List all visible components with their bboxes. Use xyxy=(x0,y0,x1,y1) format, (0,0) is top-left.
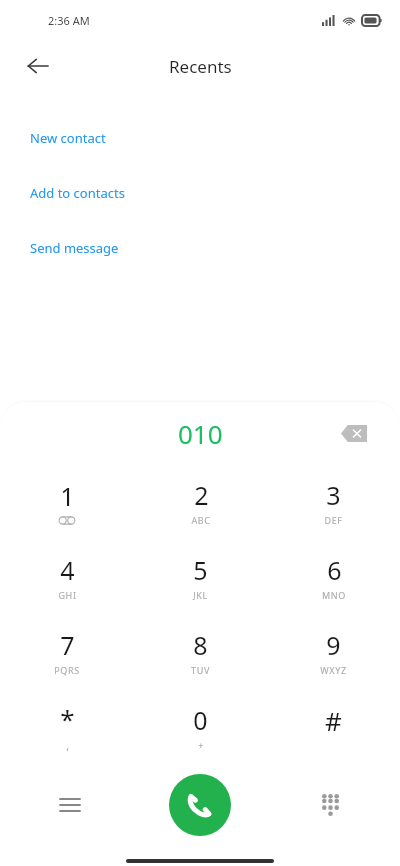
staticText: # xyxy=(325,703,342,738)
button[interactable]: New contact xyxy=(0,110,400,165)
staticText: 5 xyxy=(193,553,208,587)
staticText: Add to contacts xyxy=(30,184,125,202)
staticText: 3 xyxy=(326,478,341,512)
button[interactable]: Add to contacts xyxy=(0,165,400,220)
staticText: 8 xyxy=(193,628,208,662)
staticText: , xyxy=(66,738,70,753)
button[interactable]: Back xyxy=(16,44,60,88)
staticText: TUV xyxy=(191,664,210,676)
staticText: + xyxy=(198,739,204,751)
button[interactable]: 8 xyxy=(134,614,267,689)
button[interactable]: Send message xyxy=(0,220,400,275)
staticText: 1 xyxy=(60,479,75,513)
staticText: 6 xyxy=(327,553,342,587)
staticText: JKL xyxy=(193,589,208,601)
staticText: 2 xyxy=(194,478,209,512)
staticText: 2:36 AM xyxy=(48,13,90,28)
button[interactable]: # xyxy=(267,689,400,764)
staticText: GHI xyxy=(58,589,77,601)
staticText: 9 xyxy=(326,628,341,662)
button[interactable]: 1 xyxy=(0,464,134,539)
button[interactable]: Backspace xyxy=(334,413,374,453)
staticText: ABC xyxy=(191,514,211,526)
button[interactable]: 6 xyxy=(267,539,400,614)
button[interactable]: Dialpad xyxy=(308,783,352,827)
staticText: WXYZ xyxy=(320,664,347,676)
staticText: 4 xyxy=(60,553,75,587)
staticText: 7 xyxy=(60,628,75,662)
staticText: 0 xyxy=(193,703,208,737)
staticText: DEF xyxy=(324,514,343,526)
staticText: Send message xyxy=(30,239,119,257)
staticText: PQRS xyxy=(54,664,80,676)
button[interactable]: 9 xyxy=(267,614,400,689)
button[interactable]: 3 xyxy=(267,464,400,539)
button[interactable]: 4 xyxy=(0,539,134,614)
button[interactable]: * xyxy=(0,689,134,764)
staticText: * xyxy=(60,701,75,736)
button[interactable]: 7 xyxy=(0,614,134,689)
button[interactable]: Menu xyxy=(48,783,92,827)
button[interactable]: 5 xyxy=(134,539,267,614)
staticText: MNO xyxy=(322,589,346,601)
button[interactable]: 0 xyxy=(134,689,267,764)
staticText: New contact xyxy=(30,129,106,147)
button[interactable]: 2 xyxy=(134,464,267,539)
button[interactable]: Call xyxy=(169,774,231,836)
staticText: 010 xyxy=(178,416,223,451)
staticText: Recents xyxy=(169,55,232,78)
